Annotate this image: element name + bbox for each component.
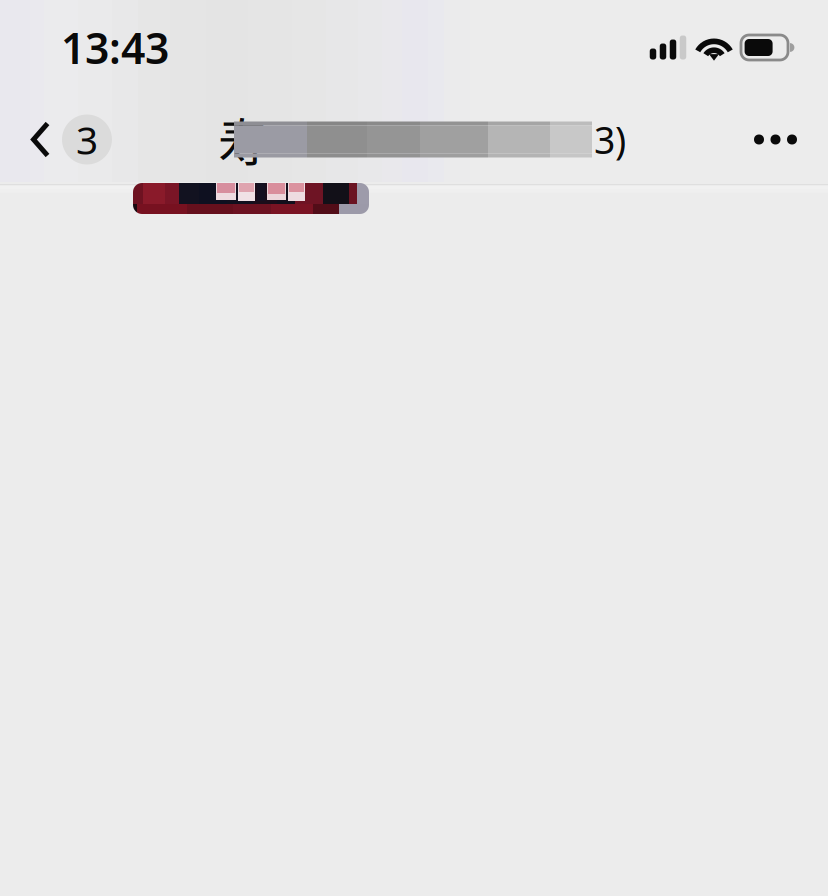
staticText: 3): [594, 115, 626, 164]
staticText: 寿: [218, 103, 269, 176]
staticText: 3: [76, 114, 98, 165]
button[interactable]: More options: [730, 110, 828, 168]
staticText: 13:43: [61, 19, 169, 76]
button[interactable]: Back: [0, 100, 126, 179]
